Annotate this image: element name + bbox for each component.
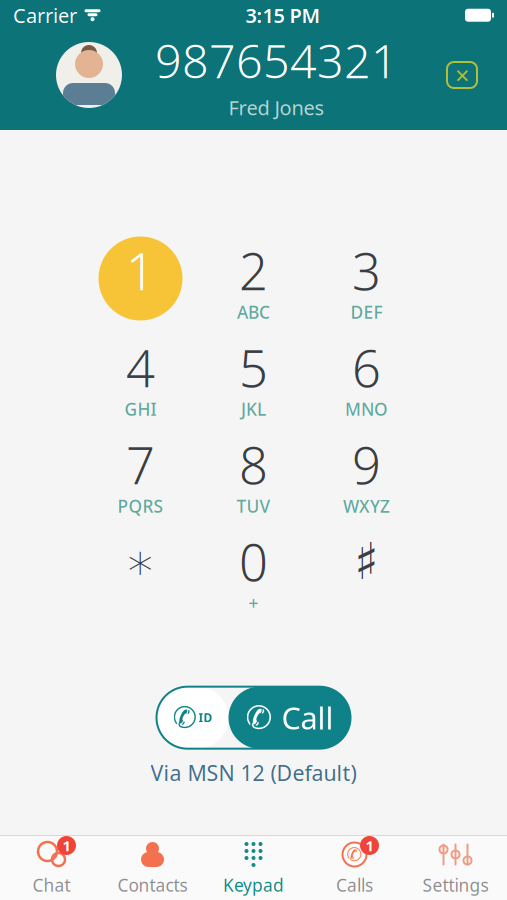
staticText: Chat <box>32 873 70 896</box>
staticText: Keypad <box>223 873 284 896</box>
staticText: 1 <box>126 237 155 304</box>
button[interactable]: 1 <box>84 230 197 327</box>
button[interactable]: 6 <box>310 327 423 424</box>
staticText: 5 <box>239 334 268 401</box>
staticText: TUV <box>236 495 270 518</box>
staticText: MNO <box>345 398 388 421</box>
button[interactable]: ✆ <box>304 836 405 900</box>
staticText: JKL <box>241 398 266 421</box>
button[interactable]: 9 <box>310 424 423 521</box>
staticText: 1 <box>365 836 373 855</box>
button[interactable]: ∗ <box>84 521 197 618</box>
staticText: ♯ <box>354 533 379 590</box>
button[interactable]: Contacts <box>102 836 203 900</box>
staticText: Call <box>281 697 333 738</box>
staticText: Contacts <box>117 873 187 896</box>
staticText: GHI <box>124 398 156 421</box>
button[interactable]: 4 <box>84 327 197 424</box>
staticText: 7 <box>126 431 155 498</box>
staticText: 1 <box>62 836 70 855</box>
staticText: ABC <box>237 301 270 324</box>
staticText: WXYZ <box>343 495 390 518</box>
staticText: ✆ <box>172 701 197 734</box>
button[interactable]: ✆ <box>156 687 350 749</box>
staticText: PQRS <box>117 495 163 518</box>
staticText: ID <box>198 710 212 726</box>
button[interactable]: 1 <box>1 836 102 900</box>
staticText: 9 <box>352 431 381 498</box>
staticText: Via MSN 12 (Default) <box>150 759 356 787</box>
staticText: ✆ <box>245 699 272 736</box>
staticText: 6 <box>352 334 381 401</box>
staticText: × <box>455 58 469 92</box>
staticText: 8 <box>239 431 268 498</box>
staticText: Calls <box>336 873 373 896</box>
staticText: 4 <box>126 334 155 401</box>
staticText: Fred Jones <box>228 94 324 121</box>
staticText: + <box>248 592 258 615</box>
staticText: 3 <box>352 237 381 304</box>
button[interactable]: 5 <box>197 327 310 424</box>
button[interactable]: ♯ <box>310 521 423 618</box>
button[interactable]: Settings <box>405 836 506 900</box>
staticText: Settings <box>422 873 488 896</box>
staticText: 2 <box>239 237 268 304</box>
staticText: ∗ <box>124 533 156 590</box>
button[interactable]: 0 <box>197 521 310 618</box>
button[interactable]: 7 <box>84 424 197 521</box>
button[interactable]: 2 <box>197 230 310 327</box>
staticText: Carrier <box>13 2 77 29</box>
button[interactable]: 8 <box>197 424 310 521</box>
staticText: 0 <box>239 528 268 595</box>
button[interactable]: Delete <box>431 46 493 104</box>
staticText: DEF <box>350 301 382 324</box>
button[interactable]: 3 <box>310 230 423 327</box>
staticText: ✆ <box>346 844 362 865</box>
staticText: 3:15 PM <box>245 2 320 29</box>
staticText: 987654321 <box>155 29 398 91</box>
button[interactable]: Keypad <box>203 836 304 900</box>
